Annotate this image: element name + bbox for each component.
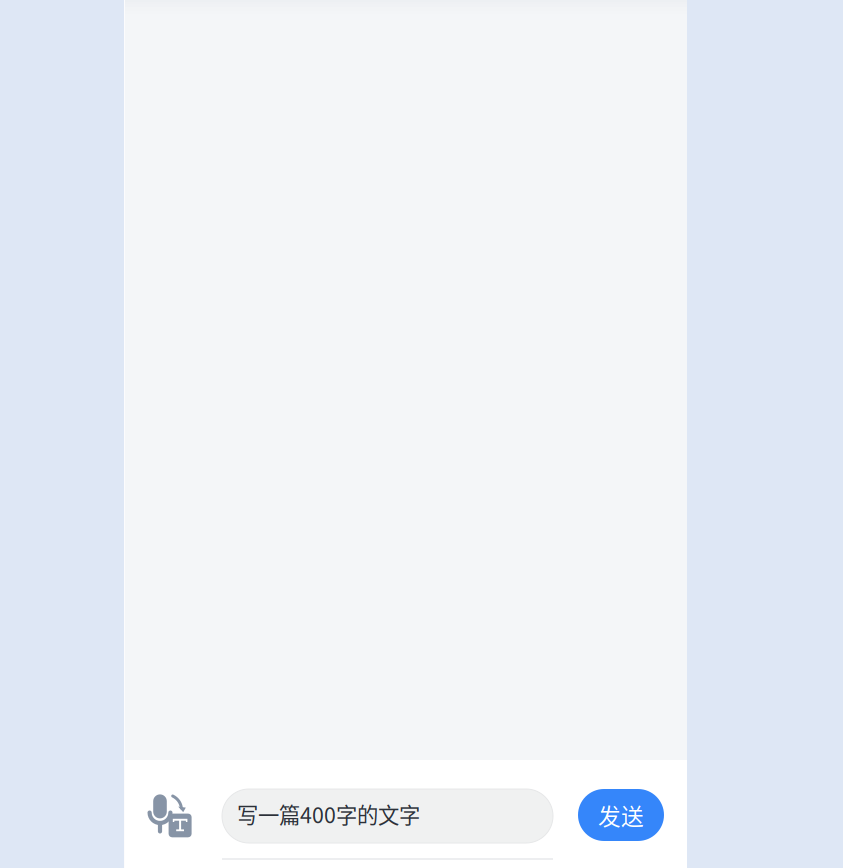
button[interactable]: Voice to text bbox=[124, 760, 222, 868]
button[interactable]: 发送 bbox=[578, 789, 664, 841]
staticText: 发送 bbox=[598, 799, 644, 831]
button[interactable]: 写一篇400字的文字 bbox=[222, 789, 553, 843]
staticText: 写一篇400字的文字 bbox=[237, 799, 420, 829]
